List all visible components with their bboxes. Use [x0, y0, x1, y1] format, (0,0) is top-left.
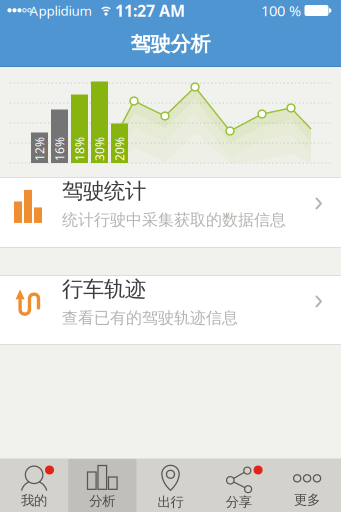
staticText: 20%: [107, 141, 131, 157]
staticText: 100 %: [261, 1, 301, 20]
staticText: 30%: [87, 141, 111, 157]
staticText: 分析: [89, 493, 115, 509]
button[interactable]: 分享: [205, 456, 273, 512]
button[interactable]: 驾驶统计: [0, 178, 341, 247]
staticText: 12%: [27, 141, 51, 157]
staticText: 出行: [157, 494, 183, 510]
staticText: 统计行驶中采集获取的数据信息: [62, 210, 286, 230]
button[interactable]: 更多: [273, 458, 341, 512]
button[interactable]: 分析: [68, 457, 136, 512]
button[interactable]: 出行: [136, 456, 205, 512]
button[interactable]: 我的: [0, 457, 68, 512]
staticText: 驾驶分析: [130, 32, 210, 56]
staticText: 18%: [67, 141, 91, 157]
staticText: 11:27 AM: [115, 0, 185, 21]
staticText: 分享: [226, 494, 252, 510]
staticText: Applidium: [29, 2, 91, 19]
staticText: 驾驶统计: [62, 178, 146, 204]
staticText: 行车轨迹: [62, 276, 146, 302]
button[interactable]: 行车轨迹: [0, 276, 341, 344]
staticText: 更多: [294, 492, 320, 508]
staticText: 16%: [47, 141, 71, 157]
staticText: 查看已有的驾驶轨迹信息: [62, 308, 238, 328]
staticText: 我的: [21, 492, 47, 509]
